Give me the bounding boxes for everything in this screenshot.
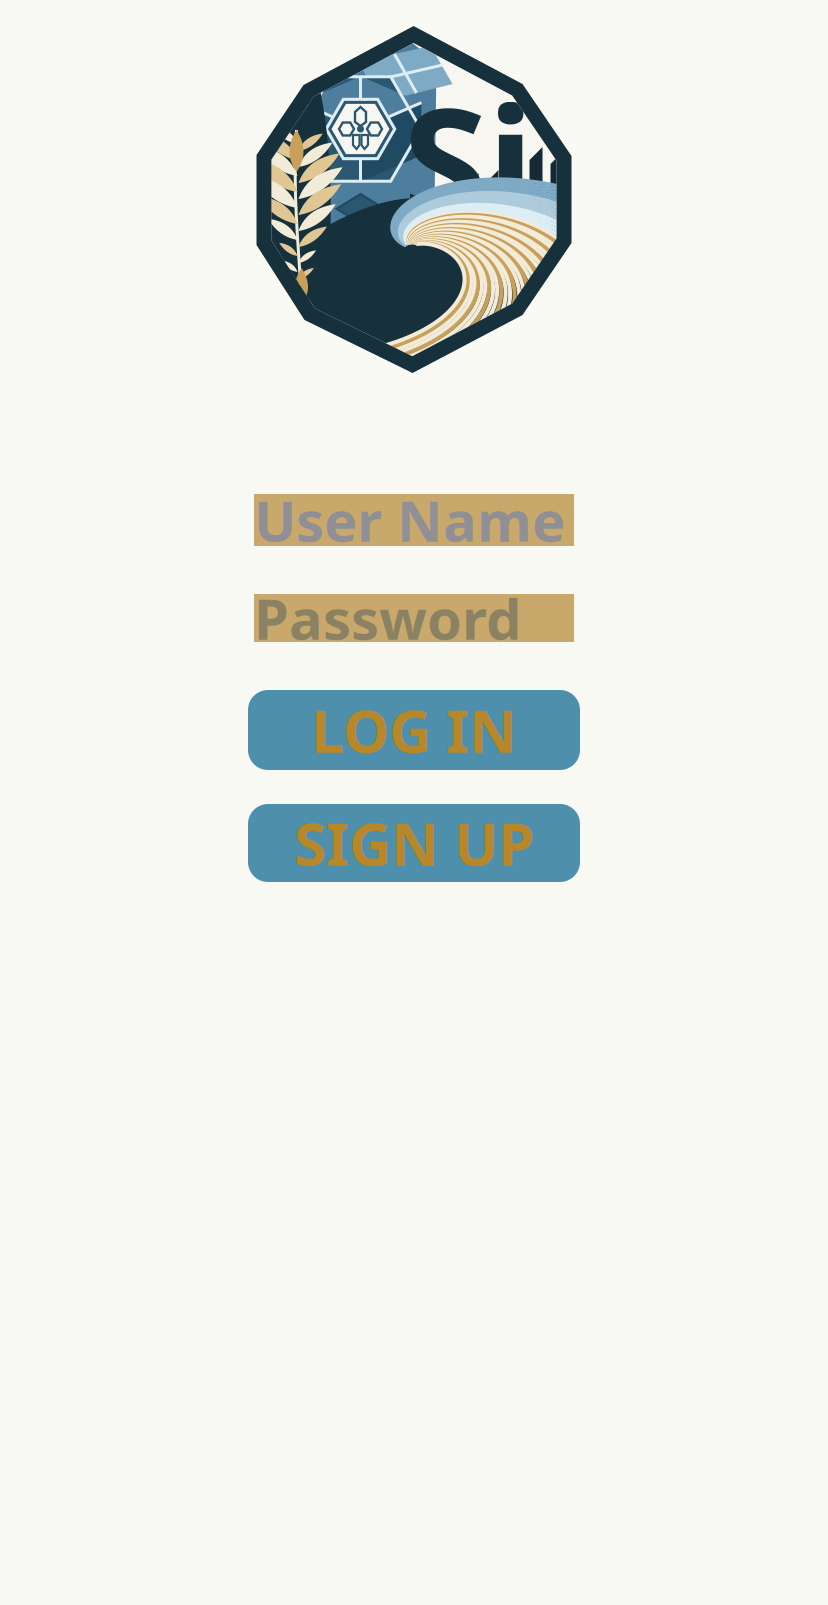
staticText: Si xyxy=(402,57,533,262)
staticText: User Name xyxy=(254,483,565,557)
staticText: LOG IN xyxy=(311,691,517,769)
button[interactable]: SIGN UP xyxy=(248,804,580,882)
staticText: Password xyxy=(254,581,521,655)
staticText: SIGN UP xyxy=(294,804,534,882)
button[interactable]: LOG IN xyxy=(248,690,580,770)
